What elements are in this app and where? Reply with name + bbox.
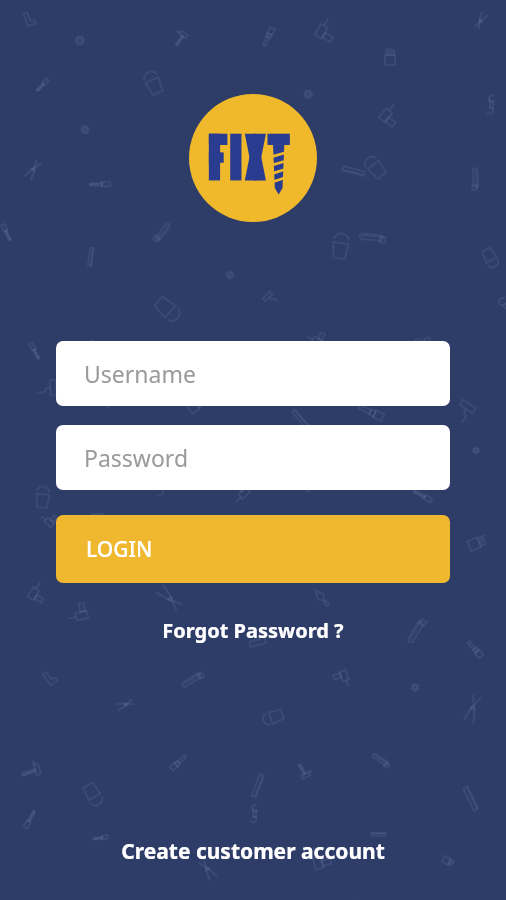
button[interactable]: LOGIN bbox=[56, 515, 450, 583]
staticText: Create customer account bbox=[121, 837, 385, 866]
staticText: Username bbox=[84, 358, 196, 389]
button[interactable]: Forgot Password ? bbox=[56, 609, 450, 652]
button[interactable]: Create customer account bbox=[97, 829, 409, 874]
staticText: Password bbox=[84, 442, 189, 473]
staticText: LOGIN bbox=[86, 535, 153, 564]
button[interactable]: Username bbox=[56, 341, 450, 406]
button[interactable]: Password bbox=[56, 425, 450, 490]
staticText: Forgot Password ? bbox=[162, 617, 344, 644]
